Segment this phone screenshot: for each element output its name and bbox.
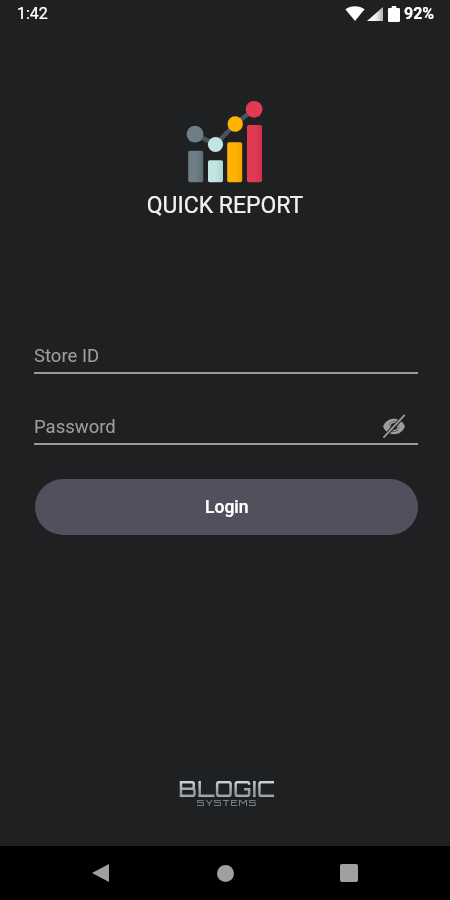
staticText: SYSTEMS <box>2 797 450 809</box>
staticText: 92% <box>404 4 435 23</box>
button[interactable]: Home <box>201 846 249 900</box>
button[interactable]: Recent apps <box>325 846 373 900</box>
staticText: BLOGIC <box>2 775 450 803</box>
button[interactable]: Login <box>35 479 418 535</box>
staticText: 1:42 <box>17 4 48 23</box>
other: Show password <box>382 414 406 438</box>
button[interactable]: Store ID <box>34 342 418 374</box>
staticText: Login <box>205 497 249 518</box>
staticText: Password <box>34 416 116 438</box>
button[interactable]: Back <box>76 846 124 900</box>
button[interactable]: Password <box>34 413 418 445</box>
staticText: QUICK REPORT <box>0 192 450 219</box>
staticText: Store ID <box>34 345 100 367</box>
